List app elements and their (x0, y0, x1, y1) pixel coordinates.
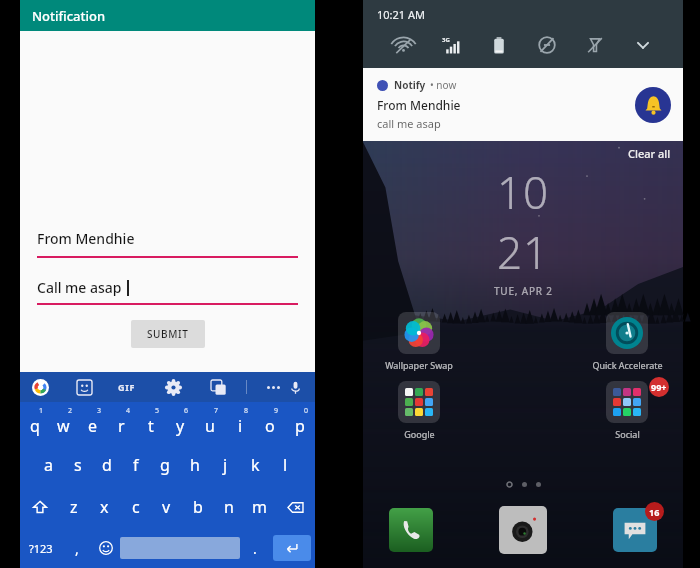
staticText: SUBMIT (147, 327, 189, 341)
button[interactable]: Emoji (91, 528, 120, 568)
button[interactable]: l (270, 444, 300, 486)
button[interactable]: Social (591, 381, 663, 440)
button[interactable]: v (151, 486, 182, 528)
staticText: 9 (274, 406, 279, 416)
staticText: 21 (497, 222, 550, 282)
button[interactable]: Do not disturb (523, 36, 571, 54)
staticText: • now (430, 78, 457, 92)
button[interactable]: Settings (166, 380, 181, 395)
button[interactable]: 3 (78, 402, 107, 444)
staticText: 10 (497, 162, 550, 222)
staticText: h (190, 454, 200, 476)
button[interactable]: Stickers (77, 380, 92, 395)
button[interactable]: x (89, 486, 120, 528)
button[interactable]: h (180, 444, 210, 486)
button[interactable]: Wi-Fi off (379, 36, 427, 55)
button[interactable]: g (150, 444, 180, 486)
button[interactable]: More (267, 386, 280, 389)
staticText: 5 (155, 406, 160, 416)
staticText: , (75, 539, 79, 558)
button[interactable]: n (213, 486, 244, 528)
button[interactable]: Mobile signal (427, 36, 475, 55)
staticText: w (57, 415, 70, 437)
button[interactable]: 5 (136, 402, 165, 444)
staticText: Clear all (628, 146, 671, 161)
button[interactable]: Google (383, 381, 455, 440)
button[interactable]: Clear all (628, 146, 683, 161)
button[interactable]: GIF (118, 381, 136, 393)
button[interactable]: Notification (20, 0, 315, 31)
button[interactable]: Camera (499, 506, 547, 554)
button[interactable]: From Mendhie (37, 229, 298, 258)
staticText: n (224, 496, 234, 518)
button[interactable]: . (240, 528, 269, 568)
button[interactable]: Expand (619, 36, 667, 54)
button[interactable]: Battery (475, 36, 523, 55)
button[interactable]: Translate (211, 380, 226, 395)
staticText: v (162, 496, 171, 518)
button[interactable]: SUBMIT (131, 320, 205, 348)
staticText: y (176, 415, 185, 437)
button[interactable]: d (92, 444, 121, 486)
button[interactable]: , (62, 528, 91, 568)
button[interactable]: m (244, 486, 275, 528)
staticText: c (132, 496, 140, 518)
button[interactable]: 4 (107, 402, 136, 444)
staticText: 99+ (651, 381, 667, 393)
button[interactable]: ?123 (20, 528, 62, 568)
staticText: l (283, 454, 288, 476)
staticText: p (295, 415, 305, 437)
staticText: 7 (214, 406, 219, 416)
staticText: m (252, 496, 267, 518)
button[interactable]: s (63, 444, 92, 486)
staticText: 0 (304, 406, 309, 416)
staticText: Wallpaper Swap (385, 359, 453, 371)
staticText: x (100, 496, 109, 518)
staticText: From Mendhie (37, 229, 135, 248)
button[interactable]: Google (32, 379, 49, 396)
staticText: f (133, 454, 139, 476)
staticText: Notification (32, 7, 106, 25)
button[interactable]: z (59, 486, 89, 528)
button[interactable]: Quick Accelerate (591, 312, 663, 371)
staticText: a (44, 454, 53, 476)
button[interactable]: Shift (20, 486, 59, 528)
staticText: r (118, 415, 125, 437)
button[interactable]: k (240, 444, 270, 486)
button[interactable]: Flashlight (571, 36, 619, 54)
staticText: . (253, 539, 257, 558)
staticText: From Mendhie (377, 97, 461, 113)
staticText: 2 (68, 406, 73, 416)
staticText: 16 (649, 506, 660, 518)
button[interactable]: a (34, 444, 63, 486)
button[interactable]: c (120, 486, 151, 528)
button[interactable]: Wallpaper Swap (383, 312, 455, 371)
button[interactable]: 8 (225, 402, 255, 444)
button[interactable]: Messages (613, 508, 657, 552)
button[interactable]: Phone (389, 508, 433, 552)
button[interactable]: 9 (255, 402, 285, 444)
staticText: o (265, 415, 275, 437)
staticText: 6 (184, 406, 189, 416)
staticText: s (74, 454, 82, 476)
staticText: g (160, 454, 170, 476)
staticText: 4 (126, 406, 131, 416)
button[interactable]: 2 (49, 402, 78, 444)
button[interactable]: 6 (165, 402, 195, 444)
button[interactable]: Call me asap (37, 278, 298, 305)
staticText: i (238, 415, 243, 437)
button[interactable]: Notify (363, 68, 683, 141)
button[interactable]: 7 (195, 402, 225, 444)
button[interactable]: 0 (285, 402, 315, 444)
button[interactable]: b (182, 486, 213, 528)
button[interactable]: Voice input (288, 380, 303, 395)
button[interactable]: 1 (20, 402, 49, 444)
button[interactable]: j (210, 444, 240, 486)
staticText: k (251, 454, 260, 476)
button[interactable]: Backspace (275, 486, 315, 528)
staticText: GIF (118, 381, 136, 393)
button[interactable]: Enter (273, 535, 311, 561)
staticText: Call me asap (37, 278, 122, 297)
button[interactable]: f (121, 444, 150, 486)
